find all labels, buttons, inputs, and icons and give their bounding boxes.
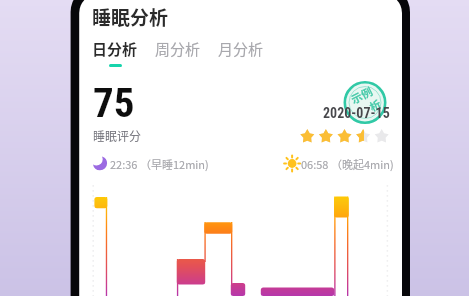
staticText: 周分析	[155, 38, 201, 60]
staticText: 75	[93, 79, 135, 127]
staticText: 06:58 （晚起4min)	[301, 156, 394, 172]
staticText: 2020-07-15	[323, 105, 390, 121]
staticText: 析	[366, 95, 383, 114]
staticText: 日分析	[92, 38, 138, 60]
button[interactable]: 周分析	[153, 38, 203, 67]
button[interactable]: 月分析	[216, 38, 266, 67]
staticText: 示例	[348, 83, 375, 107]
staticText: 月分析	[218, 38, 264, 60]
staticText: 22:36 （早睡12min)	[110, 156, 209, 172]
button[interactable]: 睡眠分析	[92, 3, 169, 31]
button[interactable]: 日分析	[90, 38, 140, 67]
staticText: 睡眠分析	[92, 3, 169, 31]
staticText: 睡眠评分	[93, 127, 142, 144]
button[interactable]: 2020-07-15	[323, 105, 390, 121]
